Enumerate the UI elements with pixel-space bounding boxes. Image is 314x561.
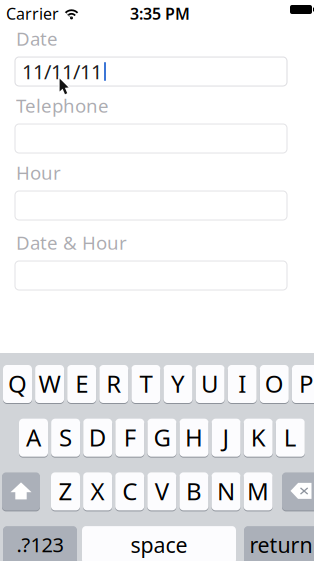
staticText: D: [89, 421, 107, 453]
button[interactable]: J: [212, 419, 241, 458]
staticText: H: [185, 421, 203, 453]
staticText: Telephone: [16, 93, 109, 118]
button[interactable]: Z: [51, 472, 80, 511]
staticText: Hour: [16, 160, 61, 185]
staticText: R: [106, 368, 121, 399]
staticText: Date: [16, 26, 58, 51]
button[interactable]: U: [196, 365, 225, 404]
staticText: L: [284, 421, 297, 453]
button[interactable]: R: [99, 365, 128, 404]
staticText: P: [299, 368, 314, 399]
button[interactable]: return: [244, 526, 314, 561]
staticText: A: [26, 421, 41, 453]
button[interactable]: A: [19, 419, 48, 458]
button[interactable]: W: [35, 365, 64, 404]
staticText: Date & Hour: [16, 230, 127, 255]
button[interactable]: P: [292, 365, 314, 404]
staticText: 3:35 PM: [130, 3, 190, 24]
button[interactable]: B: [179, 472, 208, 511]
button[interactable]: G: [147, 419, 176, 458]
button[interactable]: H: [179, 419, 208, 458]
staticText: Q: [8, 368, 27, 399]
button[interactable]: M: [244, 472, 273, 511]
button[interactable]: Y: [163, 365, 192, 404]
button[interactable]: space: [82, 526, 236, 561]
staticText: K: [251, 421, 266, 453]
button[interactable]: K: [244, 419, 273, 458]
staticText: E: [75, 368, 88, 399]
staticText: B: [186, 475, 202, 507]
button[interactable]: .?123: [3, 526, 77, 561]
staticText: M: [247, 475, 269, 507]
staticText: I: [238, 368, 246, 399]
staticText: 11/11/11: [22, 58, 102, 85]
staticText: O: [265, 368, 284, 399]
staticText: N: [217, 475, 235, 507]
staticText: W: [39, 368, 61, 399]
button[interactable]: O: [260, 365, 289, 404]
button[interactable]: F: [115, 419, 144, 458]
button[interactable]: [15, 124, 287, 153]
button[interactable]: [15, 261, 287, 290]
button[interactable]: Q: [3, 365, 32, 404]
staticText: Z: [58, 475, 72, 507]
button[interactable]: E: [67, 365, 96, 404]
staticText: space: [130, 530, 187, 559]
button[interactable]: X: [83, 472, 112, 511]
staticText: X: [91, 475, 105, 507]
button[interactable]: T: [131, 365, 160, 404]
staticText: Carrier: [6, 3, 59, 24]
staticText: V: [155, 475, 169, 507]
staticText: F: [124, 421, 136, 453]
staticText: return: [249, 530, 312, 559]
staticText: S: [59, 421, 72, 453]
button[interactable]: N: [211, 472, 240, 511]
staticText: G: [153, 421, 170, 453]
button[interactable]: C: [115, 472, 144, 511]
button[interactable]: I: [228, 365, 257, 404]
button[interactable]: D: [83, 419, 112, 458]
staticText: U: [201, 368, 219, 399]
button[interactable]: Delete: [282, 472, 314, 511]
button[interactable]: V: [147, 472, 176, 511]
staticText: T: [139, 368, 152, 399]
button[interactable]: Shift: [2, 472, 40, 511]
button[interactable]: [15, 191, 287, 220]
button[interactable]: L: [276, 419, 305, 458]
staticText: Y: [171, 368, 185, 399]
staticText: .?123: [16, 531, 63, 558]
staticText: C: [122, 475, 137, 507]
button[interactable]: 11/11/11: [15, 57, 287, 86]
button[interactable]: S: [51, 419, 80, 458]
staticText: J: [223, 421, 230, 453]
